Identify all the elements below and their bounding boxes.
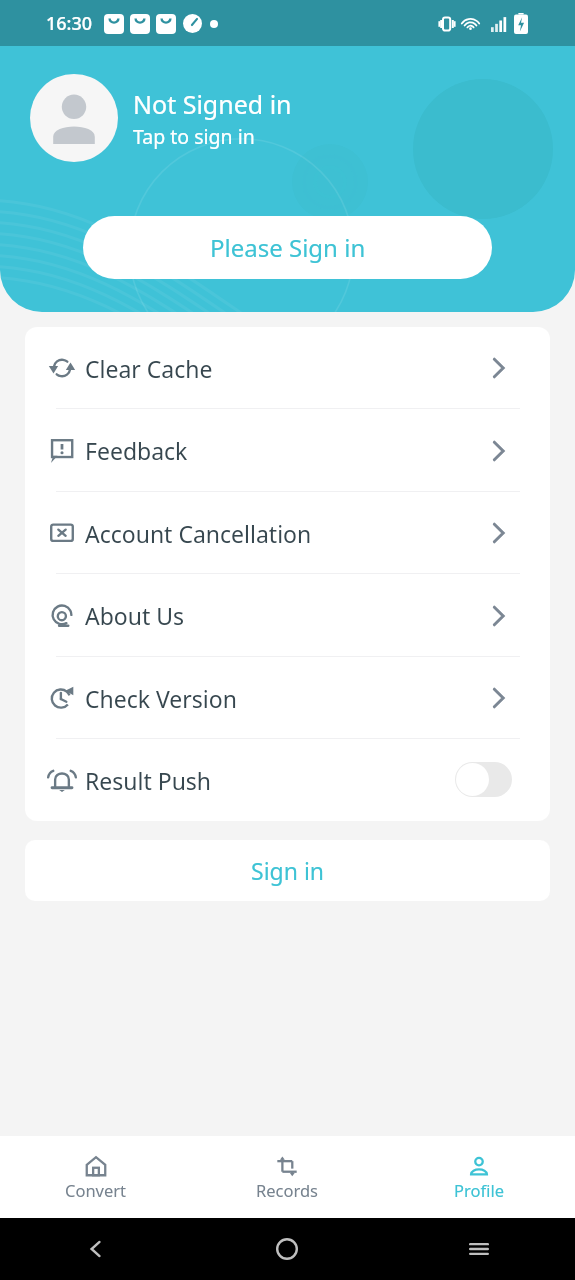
button[interactable]: Clear Cache — [25, 327, 550, 409]
staticText: Feedback — [85, 435, 188, 466]
button[interactable]: About Us — [25, 574, 550, 657]
staticText: Check Version — [85, 683, 237, 714]
button[interactable]: Sign in — [25, 840, 550, 901]
staticText: Sign in — [251, 855, 325, 886]
staticText: 16:30 — [46, 11, 93, 36]
staticText: Account Cancellation — [85, 518, 312, 549]
button[interactable]: Not Signed in — [30, 74, 292, 162]
staticText: Convert — [65, 1179, 127, 1201]
button[interactable]: Check Version — [25, 657, 550, 739]
staticText: Not Signed in — [133, 87, 292, 121]
button[interactable]: Records — [191, 1136, 383, 1218]
staticText: Please Sign in — [210, 231, 366, 264]
button[interactable]: Recents — [468, 1238, 490, 1260]
button[interactable]: Result Push — [25, 739, 550, 821]
button[interactable]: Account Cancellation — [25, 492, 550, 574]
staticText: Tap to sign in — [133, 123, 255, 150]
staticText: Result Push — [85, 765, 212, 796]
staticText: About Us — [85, 600, 185, 631]
button[interactable]: Convert — [0, 1136, 191, 1218]
staticText: Clear Cache — [85, 353, 213, 384]
button[interactable]: Home — [276, 1238, 298, 1260]
button[interactable]: Result Push toggle — [455, 762, 512, 797]
button[interactable]: Back — [85, 1238, 107, 1260]
button[interactable]: Feedback — [25, 409, 550, 492]
button[interactable]: Please Sign in — [83, 216, 492, 279]
button[interactable]: Profile — [383, 1136, 575, 1218]
staticText: Profile — [454, 1179, 504, 1201]
staticText: Records — [256, 1179, 319, 1201]
